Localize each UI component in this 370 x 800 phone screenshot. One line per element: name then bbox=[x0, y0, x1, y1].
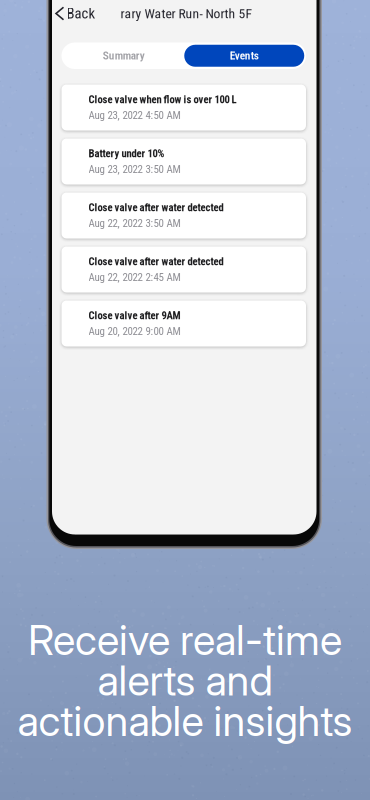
button[interactable]: Close valve after water detected bbox=[61, 246, 306, 292]
staticText: Battery under 10% bbox=[88, 147, 164, 160]
button[interactable]: Close valve when flow is over 100 L bbox=[61, 84, 306, 130]
staticText: Aug 22, 2022 2:45 AM bbox=[88, 271, 180, 284]
staticText: Back bbox=[66, 5, 95, 22]
staticText: Close valve when flow is over 100 L bbox=[88, 93, 236, 106]
staticText: Close valve after 9AM bbox=[88, 309, 180, 322]
staticText: Aug 20, 2022 9:00 AM bbox=[88, 325, 180, 338]
staticText: Receive real-time bbox=[28, 615, 342, 665]
staticText: Close valve after water detected bbox=[88, 201, 223, 214]
button[interactable]: Summary bbox=[63, 42, 184, 69]
staticText: rary Water Run- North 5F bbox=[120, 5, 252, 21]
button[interactable]: Back bbox=[56, 2, 106, 24]
staticText: Close valve after water detected bbox=[88, 255, 223, 268]
staticText: alerts and bbox=[97, 655, 272, 705]
button[interactable]: Events bbox=[184, 45, 304, 67]
button[interactable]: Close valve after 9AM bbox=[61, 300, 306, 346]
staticText: Aug 23, 2022 4:50 AM bbox=[88, 109, 180, 122]
staticText: Aug 23, 2022 3:50 AM bbox=[88, 163, 180, 176]
button[interactable]: Battery under 10% bbox=[61, 138, 306, 184]
staticText: actionable insights bbox=[17, 696, 352, 746]
staticText: Aug 22, 2022 3:50 AM bbox=[88, 217, 180, 230]
staticText: Events bbox=[230, 49, 259, 62]
button[interactable]: Close valve after water detected bbox=[61, 192, 306, 238]
staticText: Summary bbox=[103, 49, 145, 62]
